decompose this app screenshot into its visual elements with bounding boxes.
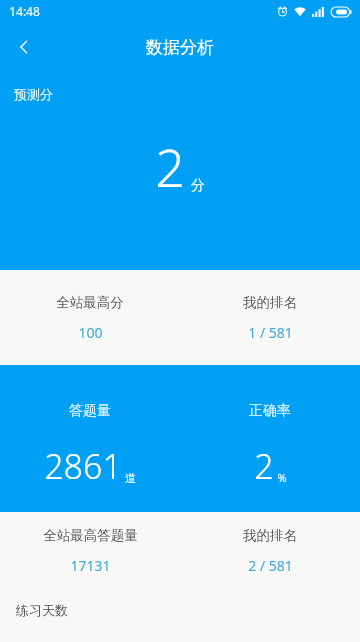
staticText: 我的排名	[243, 527, 297, 544]
staticText: 全站最高答题量	[43, 527, 138, 544]
staticText: 2861	[44, 443, 122, 489]
staticText: 练习天数	[16, 602, 68, 618]
staticText: 2	[254, 443, 274, 489]
button[interactable]: 我的排名	[180, 512, 360, 590]
staticText: %	[277, 470, 287, 485]
button[interactable]: Back	[0, 23, 48, 71]
staticText: 2	[155, 131, 185, 202]
staticText: 全站最高分	[56, 294, 124, 311]
staticText: 我的排名	[243, 294, 297, 311]
staticText: 数据分析	[146, 37, 214, 58]
button[interactable]: 正确率	[180, 365, 360, 512]
staticText: 100	[78, 323, 103, 342]
button[interactable]: 我的排名	[180, 270, 360, 365]
staticText: 17131	[70, 556, 111, 575]
staticText: 分	[191, 177, 205, 195]
button[interactable]: 全站最高答题量	[0, 512, 180, 590]
button[interactable]: 答题量	[0, 365, 180, 512]
staticText: 2 / 581	[248, 556, 293, 575]
staticText: 道	[125, 471, 136, 485]
staticText: 1 / 581	[248, 323, 293, 342]
staticText: 答题量	[69, 402, 111, 420]
staticText: 14:48	[9, 3, 40, 19]
button[interactable]: 全站最高分	[0, 270, 180, 365]
staticText: 正确率	[249, 402, 291, 420]
staticText: 预测分	[14, 86, 53, 102]
